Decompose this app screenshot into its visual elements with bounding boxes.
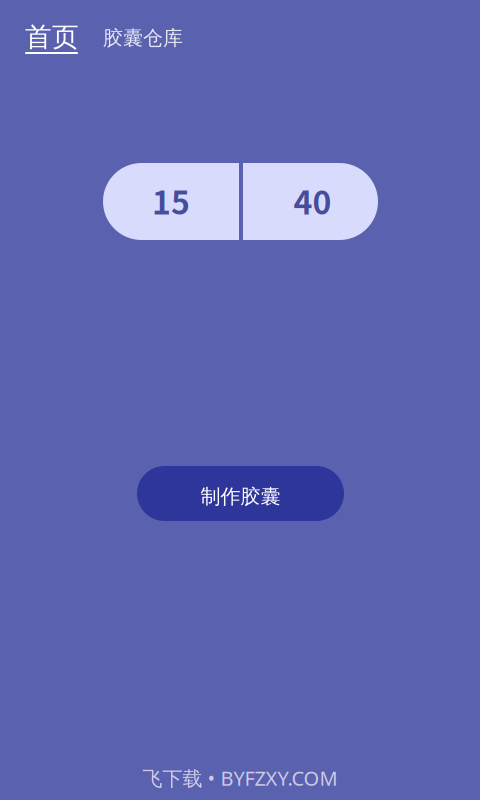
- staticText: 制作胶囊: [200, 484, 280, 509]
- button[interactable]: 40: [243, 163, 378, 240]
- button[interactable]: 胶囊仓库: [100, 21, 186, 51]
- staticText: 首页: [25, 21, 79, 53]
- button[interactable]: 制作胶囊: [137, 466, 344, 521]
- staticText: 15: [152, 177, 190, 224]
- staticText: 胶囊仓库: [103, 26, 183, 50]
- button[interactable]: 15: [103, 163, 239, 240]
- button[interactable]: 首页: [24, 21, 80, 65]
- staticText: 飞下载 • BYFZXY.COM: [142, 765, 337, 791]
- staticText: 40: [293, 177, 331, 224]
